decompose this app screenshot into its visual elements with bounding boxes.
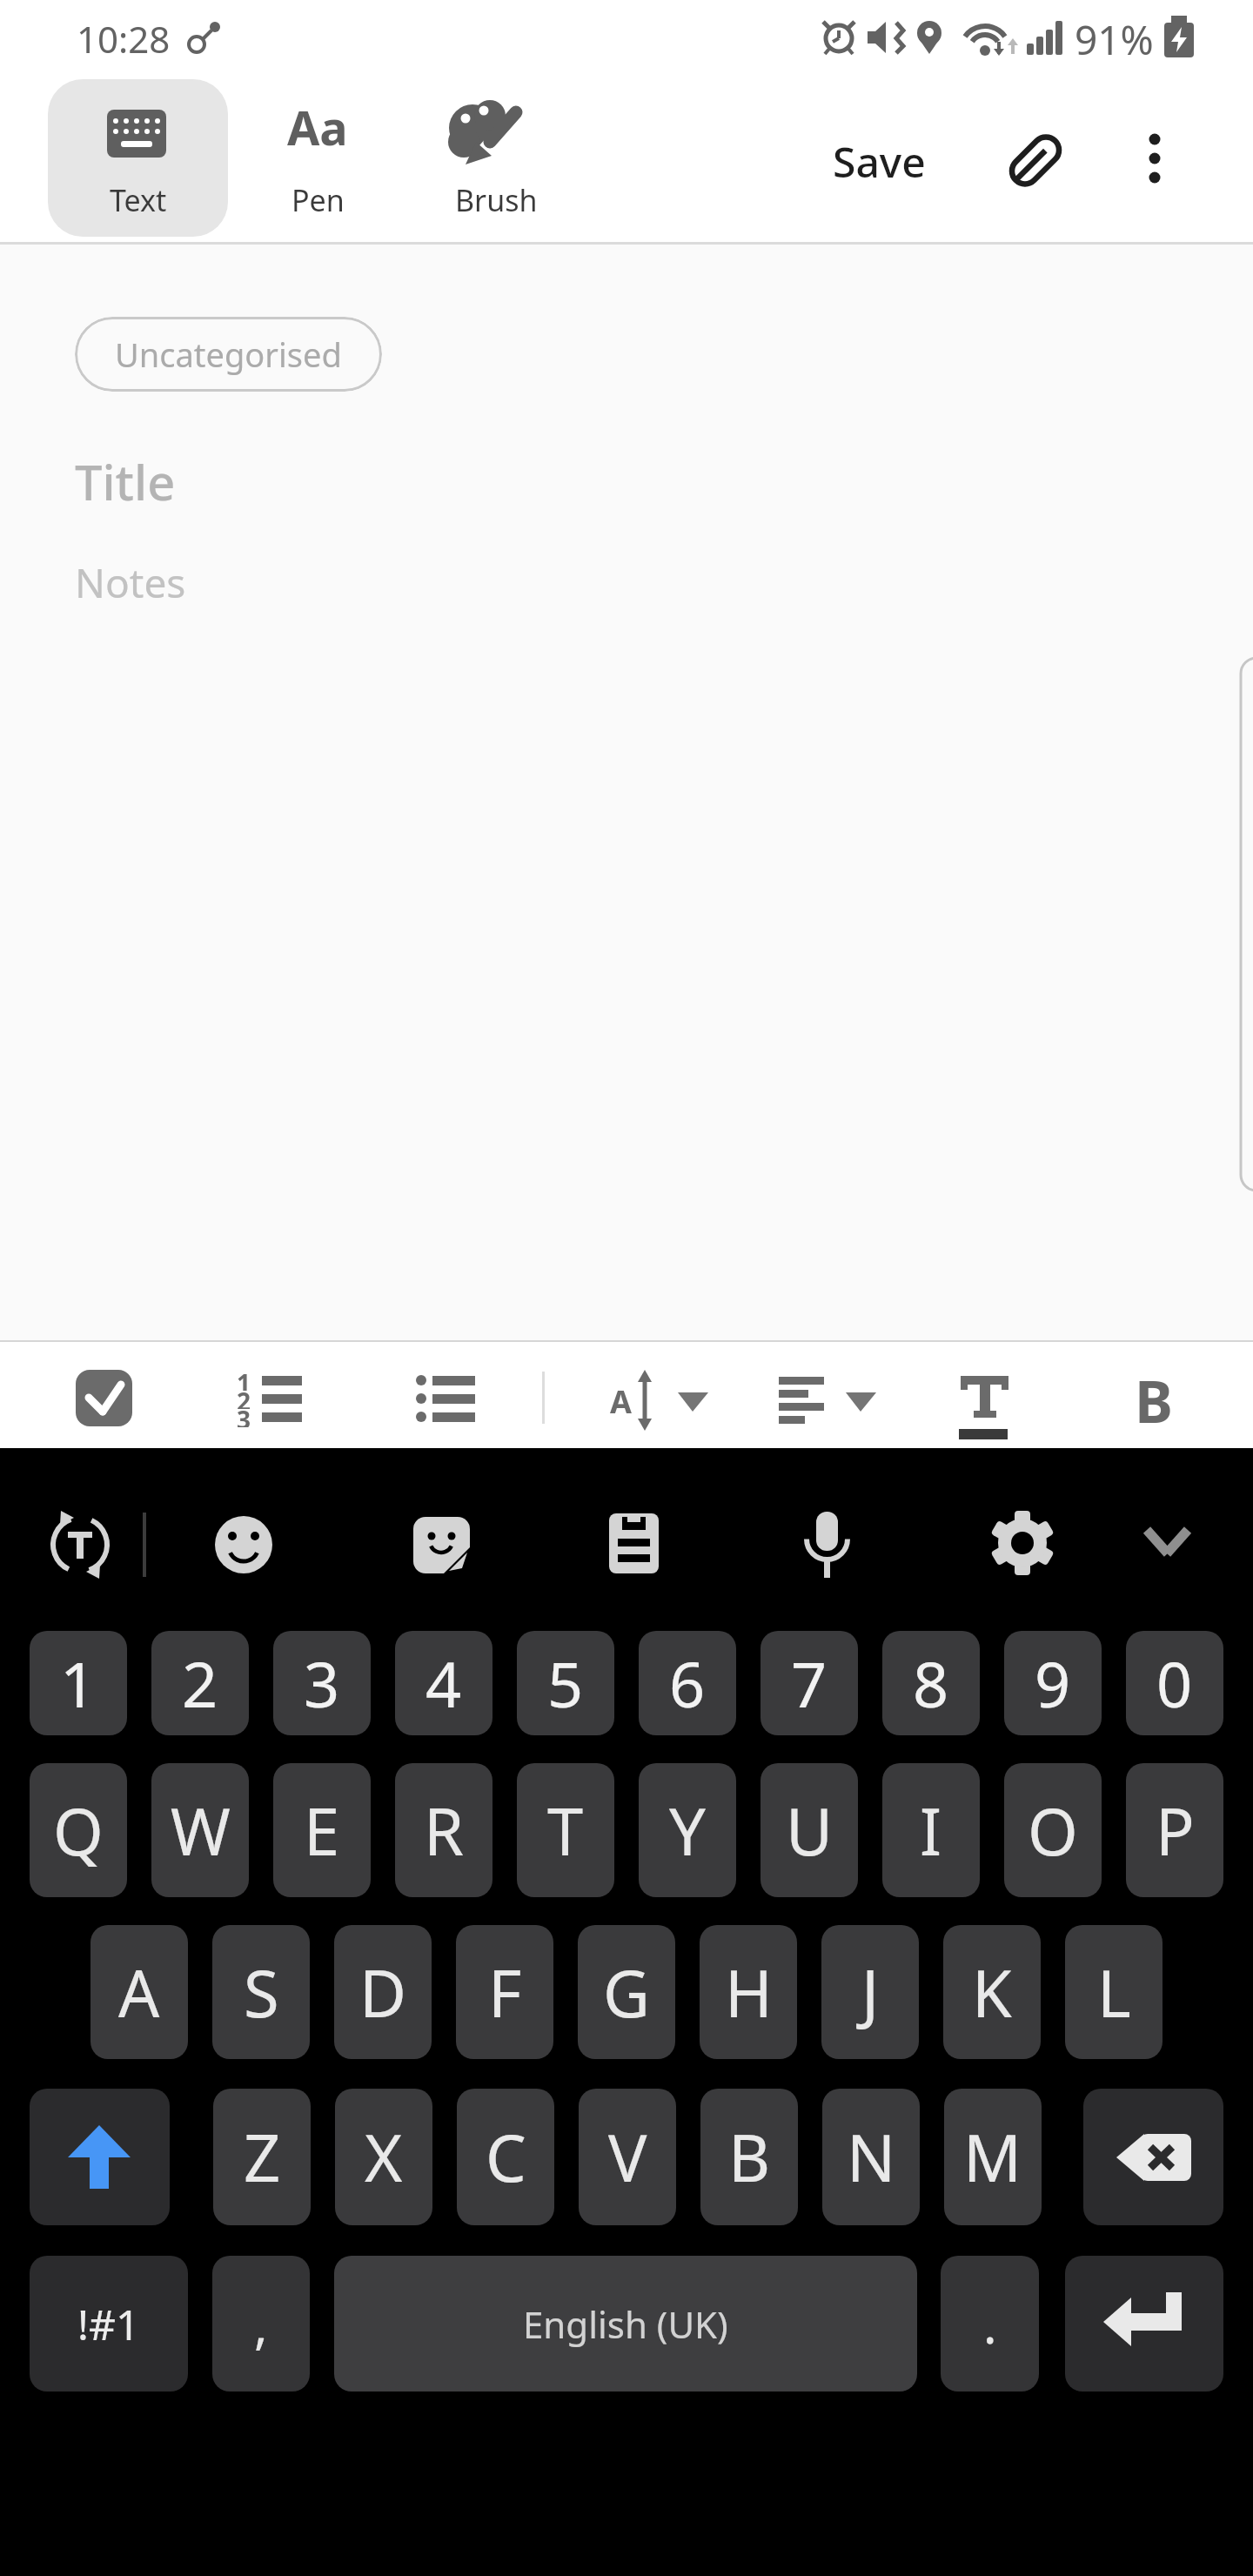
button[interactable]: 6 bbox=[639, 1631, 736, 1735]
button[interactable]: 5 bbox=[517, 1631, 614, 1735]
button[interactable]: 8 bbox=[882, 1631, 980, 1735]
button[interactable] bbox=[399, 1492, 486, 1596]
button[interactable]: !#1 bbox=[30, 2256, 188, 2392]
staticText: Brush bbox=[455, 180, 538, 215]
button[interactable]: R bbox=[395, 1763, 492, 1897]
staticText: 10:28 bbox=[77, 14, 171, 61]
button[interactable] bbox=[592, 1354, 722, 1441]
button[interactable] bbox=[988, 111, 1083, 207]
staticText: L bbox=[1097, 1949, 1131, 2036]
button[interactable]: W bbox=[151, 1763, 249, 1897]
button[interactable]: 2 bbox=[151, 1631, 249, 1735]
staticText: Notes bbox=[75, 555, 186, 604]
button[interactable] bbox=[37, 1492, 124, 1596]
button[interactable]: A bbox=[90, 1925, 188, 2059]
staticText: D bbox=[359, 1949, 407, 2036]
button[interactable] bbox=[761, 1354, 892, 1441]
button[interactable]: 0 bbox=[1126, 1631, 1223, 1735]
staticText: 0 bbox=[1156, 1640, 1193, 1726]
button[interactable]: U bbox=[761, 1763, 858, 1897]
staticText: Y bbox=[669, 1787, 706, 1875]
button[interactable]: N bbox=[822, 2089, 920, 2225]
button[interactable]: E bbox=[273, 1763, 371, 1897]
staticText: I bbox=[920, 1787, 942, 1875]
staticText: 2 bbox=[182, 1640, 218, 1726]
button[interactable]: . bbox=[941, 2256, 1039, 2392]
staticText: Q bbox=[53, 1787, 104, 1875]
button[interactable]: Y bbox=[639, 1763, 736, 1897]
staticText: F bbox=[488, 1949, 522, 2036]
button[interactable]: T bbox=[517, 1763, 614, 1897]
button[interactable] bbox=[200, 1492, 287, 1596]
staticText: Uncategorised bbox=[115, 332, 342, 377]
button[interactable] bbox=[940, 1354, 1027, 1441]
button[interactable] bbox=[223, 1354, 318, 1441]
button[interactable]: M bbox=[944, 2089, 1042, 2225]
button[interactable] bbox=[400, 1354, 496, 1441]
button[interactable]: Uncategorised bbox=[75, 317, 382, 392]
staticText: 1 bbox=[60, 1640, 97, 1726]
staticText: V bbox=[608, 2113, 647, 2201]
button[interactable]: English (UK) bbox=[334, 2256, 917, 2392]
button[interactable] bbox=[592, 1492, 679, 1596]
staticText: X bbox=[365, 2113, 403, 2201]
button[interactable] bbox=[1065, 2256, 1223, 2392]
button[interactable] bbox=[979, 1492, 1066, 1596]
staticText: R bbox=[424, 1787, 465, 1875]
button[interactable]: L bbox=[1065, 1925, 1163, 2059]
button[interactable]: P bbox=[1126, 1763, 1223, 1897]
button[interactable]: 1 bbox=[30, 1631, 127, 1735]
button[interactable]: V bbox=[579, 2089, 676, 2225]
button[interactable]: X bbox=[335, 2089, 432, 2225]
staticText: K bbox=[972, 1949, 1012, 2036]
button[interactable] bbox=[1118, 1354, 1196, 1441]
button[interactable]: Q bbox=[30, 1763, 127, 1897]
staticText: Text bbox=[110, 180, 167, 215]
button[interactable]: Brush bbox=[422, 79, 570, 237]
button[interactable]: 9 bbox=[1004, 1631, 1102, 1735]
staticText: J bbox=[861, 1949, 880, 2036]
button[interactable] bbox=[61, 1354, 148, 1441]
button[interactable] bbox=[783, 1492, 870, 1596]
staticText: 8 bbox=[913, 1640, 949, 1726]
button[interactable]: Z bbox=[213, 2089, 311, 2225]
button[interactable]: I bbox=[882, 1763, 980, 1897]
staticText: A bbox=[610, 1380, 632, 1423]
button[interactable]: G bbox=[578, 1925, 675, 2059]
button[interactable]: 7 bbox=[761, 1631, 858, 1735]
button[interactable]: 4 bbox=[395, 1631, 492, 1735]
staticText: 3 bbox=[237, 1403, 251, 1427]
button[interactable]: K bbox=[943, 1925, 1041, 2059]
button[interactable] bbox=[1118, 109, 1192, 209]
staticText: Save bbox=[833, 133, 926, 190]
button[interactable] bbox=[30, 2089, 170, 2225]
button[interactable]: Save bbox=[822, 113, 935, 209]
button[interactable]: B bbox=[700, 2089, 798, 2225]
button[interactable]: J bbox=[821, 1925, 919, 2059]
button[interactable]: C bbox=[457, 2089, 554, 2225]
staticText: M bbox=[963, 2113, 1022, 2201]
staticText: S bbox=[244, 1949, 279, 2036]
button[interactable]: Text bbox=[48, 79, 228, 237]
staticText: , bbox=[254, 2290, 268, 2358]
staticText: Z bbox=[244, 2113, 281, 2201]
button[interactable]: Aa bbox=[248, 79, 387, 237]
button[interactable]: 3 bbox=[273, 1631, 371, 1735]
staticText: C bbox=[486, 2113, 526, 2201]
staticText: 5 bbox=[547, 1640, 584, 1726]
staticText: !#1 bbox=[77, 2296, 140, 2352]
button[interactable]: O bbox=[1004, 1763, 1102, 1897]
staticText: W bbox=[171, 1787, 231, 1875]
button[interactable] bbox=[1083, 2089, 1223, 2225]
staticText: 7 bbox=[791, 1640, 828, 1726]
staticText: E bbox=[304, 1787, 340, 1875]
button[interactable]: , bbox=[212, 2256, 310, 2392]
staticText: N bbox=[847, 2113, 896, 2201]
staticText: B bbox=[728, 2113, 771, 2201]
button[interactable]: S bbox=[212, 1925, 310, 2059]
button[interactable]: H bbox=[700, 1925, 797, 2059]
button[interactable]: F bbox=[456, 1925, 553, 2059]
staticText: U bbox=[786, 1787, 834, 1875]
button[interactable] bbox=[1122, 1492, 1209, 1596]
button[interactable]: D bbox=[334, 1925, 432, 2059]
